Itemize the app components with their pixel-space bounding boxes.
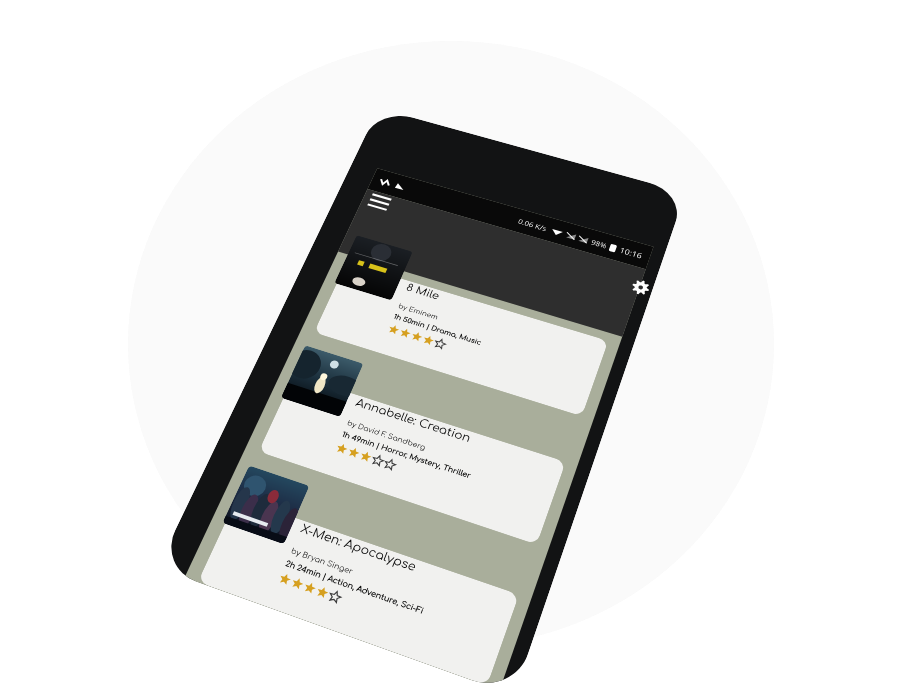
- button[interactable]: [50, 241, 390, 349]
- button[interactable]: [50, 581, 390, 689]
- staticText: Annabelle: Creation: [134, 413, 277, 429]
- staticText: 1h 49min | Horror, Mystery, Thriller: [134, 460, 293, 470]
- staticText: X-Men: Apocalypse: [134, 583, 272, 599]
- staticText: 8 Mile: [134, 243, 177, 259]
- staticText: by Eminem: [134, 274, 186, 284]
- button[interactable]: [50, 411, 390, 519]
- staticText: by David F. Sandberg: [134, 444, 232, 454]
- staticText: 0.06 K/s: [233, 104, 271, 118]
- staticText: 10:16: [366, 103, 395, 118]
